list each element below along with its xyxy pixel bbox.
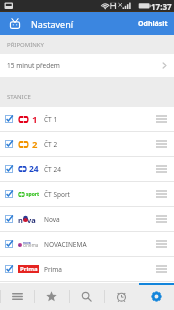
button[interactable]: 15 minut předem [0,54,174,77]
staticText: STANICE [7,93,31,101]
button[interactable]: sport [0,182,174,206]
button[interactable]: 24 [0,157,174,181]
staticText: Nova [44,215,60,224]
staticText: Prima [44,265,63,274]
staticText: 17:37 [151,1,172,12]
other: Reorder [156,190,167,198]
button[interactable]: Settings [139,283,174,310]
staticText: 1 [32,113,38,126]
button[interactable]: n [0,207,174,231]
button[interactable]: Search [69,283,104,310]
staticText: 24 [29,163,39,175]
button[interactable]: 1 [0,107,174,131]
staticText: ČT 2 [44,140,58,149]
other: Reorder [156,140,167,148]
staticText: 15 minut předem [7,61,60,70]
staticText: Odhlásit [138,19,168,29]
button[interactable]: 2 [0,132,174,156]
other: Reorder [156,215,167,223]
staticText: ČT Sport [44,190,70,199]
staticText: va [27,215,36,224]
staticText: Nastavení [31,18,74,30]
other: Reorder [156,265,167,273]
button[interactable]: Favorites [34,283,69,310]
other: Reorder [156,115,167,123]
staticText: nova [23,241,31,245]
other: Reorder [156,165,167,173]
staticText: ČT 24 [44,165,61,174]
button[interactable]: Odhlásit [132,12,174,35]
button[interactable]: Reminders [104,283,139,310]
other: Reorder [156,240,167,248]
staticText: cinema [23,242,39,248]
button[interactable]: Prima [0,257,174,281]
button[interactable]: Menu [0,283,34,310]
staticText: PŘIPOMÍNKY [7,41,44,49]
staticText: Prima [20,265,38,273]
staticText: 2 [32,138,38,151]
staticText: ČT 1 [44,115,58,124]
staticText: n [18,215,23,224]
staticText: sport [26,191,40,198]
staticText: NOVACINEMA [44,240,87,249]
button[interactable]: nova [0,232,174,256]
